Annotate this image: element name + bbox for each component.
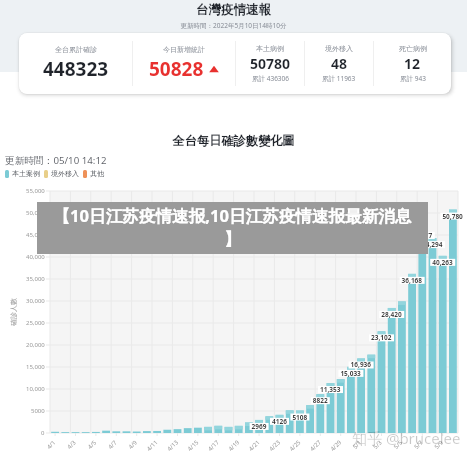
staticText: 其他 bbox=[90, 169, 104, 178]
staticText: 更新時間：05/10 14:12 bbox=[5, 154, 107, 167]
staticText: 死亡病例 bbox=[399, 44, 427, 53]
staticText: 全台每日確診數變化圖 bbox=[0, 133, 467, 148]
staticText: 本土病例 bbox=[256, 44, 284, 53]
button[interactable]: 境外移入 bbox=[305, 33, 373, 94]
staticText: 今日新增統計 bbox=[163, 45, 205, 54]
staticText: 【10日江苏疫情速报,10日江苏疫情速报最新消息 】 bbox=[37, 204, 428, 250]
button[interactable]: 全台累計確診 bbox=[19, 33, 132, 94]
button[interactable]: 死亡病例 bbox=[374, 33, 451, 94]
staticText: 累計 11963 bbox=[322, 74, 356, 83]
staticText: 累計 436306 bbox=[252, 74, 289, 83]
staticText: 48 bbox=[331, 54, 348, 73]
staticText: 全台累計確診 bbox=[55, 45, 97, 54]
staticText: 50828 bbox=[149, 56, 204, 82]
staticText: 50780 bbox=[250, 54, 291, 73]
staticText: 累計 943 bbox=[400, 74, 426, 83]
staticText: 12 bbox=[404, 54, 421, 73]
staticText: 知乎 @brucelee bbox=[352, 428, 461, 448]
button[interactable]: 今日新增統計 bbox=[133, 33, 235, 94]
staticText: 台灣疫情速報 bbox=[0, 2, 467, 18]
staticText: 本土案例 bbox=[12, 169, 40, 178]
staticText: 境外移入 bbox=[51, 169, 79, 178]
staticText: 448323 bbox=[43, 56, 109, 82]
staticText: 更新時間：2022年5月10日14時10分 bbox=[0, 21, 467, 30]
staticText: 境外移入 bbox=[325, 44, 353, 53]
button[interactable]: 本土病例 bbox=[236, 33, 304, 94]
